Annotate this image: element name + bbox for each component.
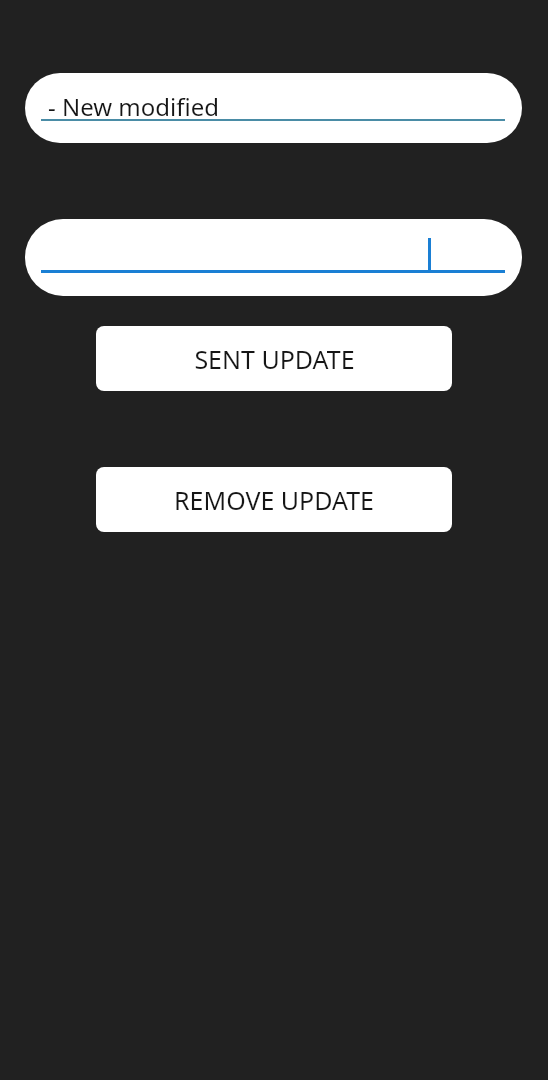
button[interactable]: REMOVE UPDATE xyxy=(96,467,452,532)
staticText: REMOVE UPDATE xyxy=(174,483,374,517)
button[interactable]: SENT UPDATE xyxy=(96,326,452,391)
staticText: SENT UPDATE xyxy=(194,342,355,376)
staticText: - New modified xyxy=(48,90,220,123)
button[interactable]: - New modified xyxy=(25,73,522,143)
button[interactable] xyxy=(25,219,522,296)
